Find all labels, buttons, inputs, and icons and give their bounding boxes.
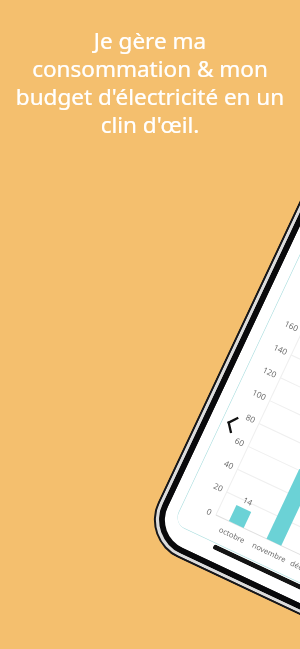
staticText: 80 bbox=[225, 402, 257, 425]
staticText: 120 bbox=[247, 357, 279, 380]
staticText: octobre bbox=[208, 520, 256, 549]
button[interactable]: Période précédente bbox=[220, 412, 244, 436]
staticText: décembre bbox=[283, 555, 300, 585]
staticText: 20 bbox=[193, 471, 225, 494]
staticText: 100 bbox=[236, 380, 268, 402]
staticText: 0 bbox=[182, 495, 214, 517]
staticText: 140 bbox=[257, 334, 289, 357]
staticText: 160 bbox=[268, 311, 300, 334]
staticText: Je gère ma consommation & mon budget d'é… bbox=[6, 25, 294, 140]
staticText: novembre bbox=[245, 537, 293, 567]
staticText: 14 bbox=[237, 491, 259, 510]
staticText: 40 bbox=[204, 448, 236, 471]
staticText: 60 bbox=[214, 426, 246, 448]
